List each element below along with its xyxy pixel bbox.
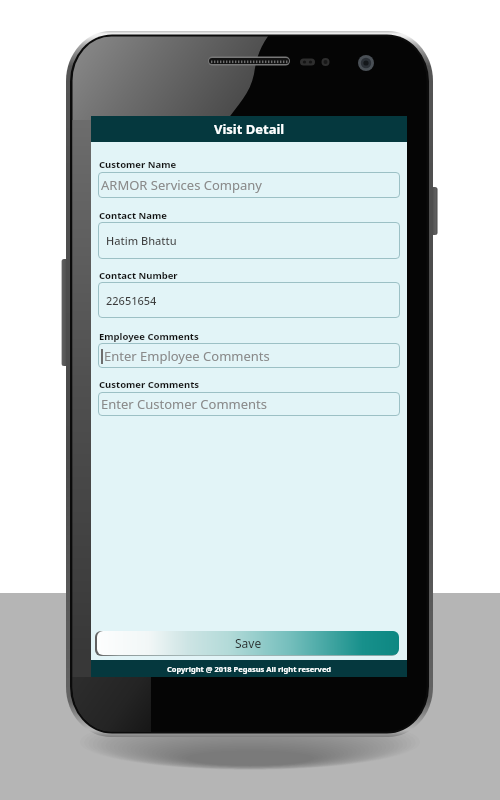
button[interactable]: Hatim Bhattu — [98, 222, 400, 259]
button[interactable]: Enter Employee Comments — [98, 343, 400, 368]
staticText: 22651654 — [106, 293, 157, 308]
staticText: Save — [235, 635, 262, 651]
staticText: Customer Name — [99, 158, 177, 171]
button[interactable]: Enter Customer Comments — [98, 392, 400, 416]
staticText: Enter Customer Comments — [101, 395, 267, 413]
staticText: Hatim Bhattu — [106, 233, 177, 248]
button[interactable]: 22651654 — [98, 282, 400, 318]
staticText: Copyright @ 2018 Pegasus All right reser… — [167, 664, 332, 674]
button[interactable]: Save — [97, 631, 399, 655]
staticText: Visit Detail — [214, 120, 285, 138]
button[interactable]: ARMOR Services Company — [98, 172, 400, 198]
staticText: Contact Name — [99, 209, 167, 222]
staticText: Customer Comments — [99, 378, 200, 391]
staticText: Contact Number — [99, 269, 178, 282]
staticText: Employee Comments — [99, 330, 199, 343]
staticText: ARMOR Services Company — [101, 176, 262, 194]
staticText: Enter Employee Comments — [104, 347, 270, 365]
